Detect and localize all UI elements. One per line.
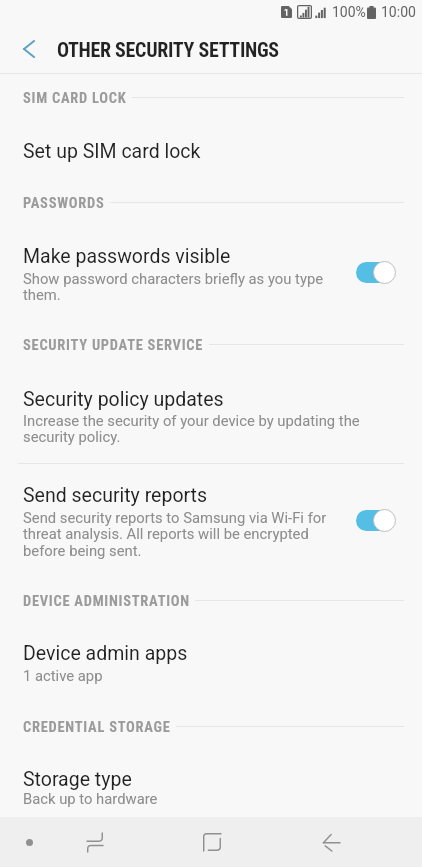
- staticText: PASSWORDS: [23, 195, 105, 212]
- button[interactable]: [0, 118, 422, 180]
- staticText: OTHER SECURITY SETTINGS: [57, 38, 279, 61]
- staticText: 100%: [332, 4, 366, 20]
- staticText: Send security reports to Samsung via Wi-…: [23, 509, 327, 560]
- staticText: Back up to hardware: [23, 790, 158, 807]
- button[interactable]: Recent apps: [36, 817, 154, 867]
- staticText: Security policy updates: [23, 388, 224, 411]
- staticText: Increase the security of your device by …: [23, 412, 360, 446]
- staticText: Set up SIM card lock: [23, 140, 201, 163]
- staticText: 10:00: [381, 4, 416, 20]
- staticText: Show password characters briefly as you …: [23, 270, 324, 304]
- button[interactable]: Back: [272, 817, 390, 867]
- button[interactable]: [0, 370, 422, 462]
- staticText: SECURITY UPDATE SERVICE: [23, 337, 204, 354]
- staticText: 1 active app: [23, 667, 103, 684]
- button[interactable]: [0, 228, 422, 308]
- staticText: Send security reports: [23, 484, 208, 507]
- button[interactable]: Toggle switch: [350, 255, 402, 289]
- button[interactable]: [0, 746, 422, 816]
- button[interactable]: [0, 620, 422, 690]
- button[interactable]: Show navigation hint: [5, 817, 53, 867]
- staticText: DEVICE ADMINISTRATION: [23, 593, 190, 610]
- staticText: SIM CARD LOCK: [23, 90, 127, 107]
- staticText: Storage type: [23, 768, 132, 791]
- staticText: Device admin apps: [23, 642, 188, 665]
- staticText: CREDENTIAL STORAGE: [23, 719, 171, 736]
- button[interactable]: Toggle switch: [350, 503, 402, 537]
- button[interactable]: Home: [153, 817, 271, 867]
- staticText: Make passwords visible: [23, 245, 231, 268]
- button[interactable]: Navigate up: [6, 24, 52, 73]
- button[interactable]: [0, 464, 422, 574]
